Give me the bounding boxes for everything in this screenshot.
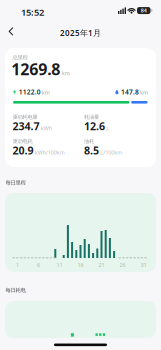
staticText: 234.7: [12, 119, 39, 133]
staticText: 油耗: [84, 138, 94, 145]
staticText: 耗油量: [84, 114, 99, 120]
staticText: 总里程: [12, 54, 27, 61]
staticText: 147.8: [121, 87, 139, 96]
staticText: 8.5: [84, 143, 99, 158]
staticText: L/100km: [100, 149, 122, 156]
staticText: km: [140, 89, 148, 96]
staticText: 16: [77, 261, 83, 269]
staticText: 11: [56, 261, 62, 269]
staticText: 15:52: [21, 6, 44, 18]
staticText: 每日里程: [5, 179, 25, 186]
staticText: 84: [141, 7, 147, 14]
staticText: 26: [119, 261, 125, 269]
button[interactable]: Back: [0, 0, 161, 350]
staticText: kWh/100km: [35, 149, 65, 156]
staticText: 1269.8: [11, 58, 60, 79]
staticText: 驱动耗电量: [12, 114, 37, 120]
staticText: 驱动电耗: [12, 138, 32, 145]
staticText: kWh: [41, 125, 52, 132]
staticText: 1: [16, 261, 19, 269]
staticText: 1122.0: [19, 87, 41, 96]
staticText: L: [106, 125, 109, 132]
staticText: 2025年1月: [60, 27, 101, 38]
staticText: 20.9: [12, 143, 33, 158]
staticText: 每日耗电: [5, 287, 25, 294]
staticText: 12.6: [84, 119, 105, 133]
staticText: 31: [140, 261, 146, 269]
staticText: km: [42, 89, 50, 96]
staticText: km: [62, 69, 70, 77]
staticText: 6: [37, 261, 40, 269]
staticText: 21: [98, 261, 104, 269]
